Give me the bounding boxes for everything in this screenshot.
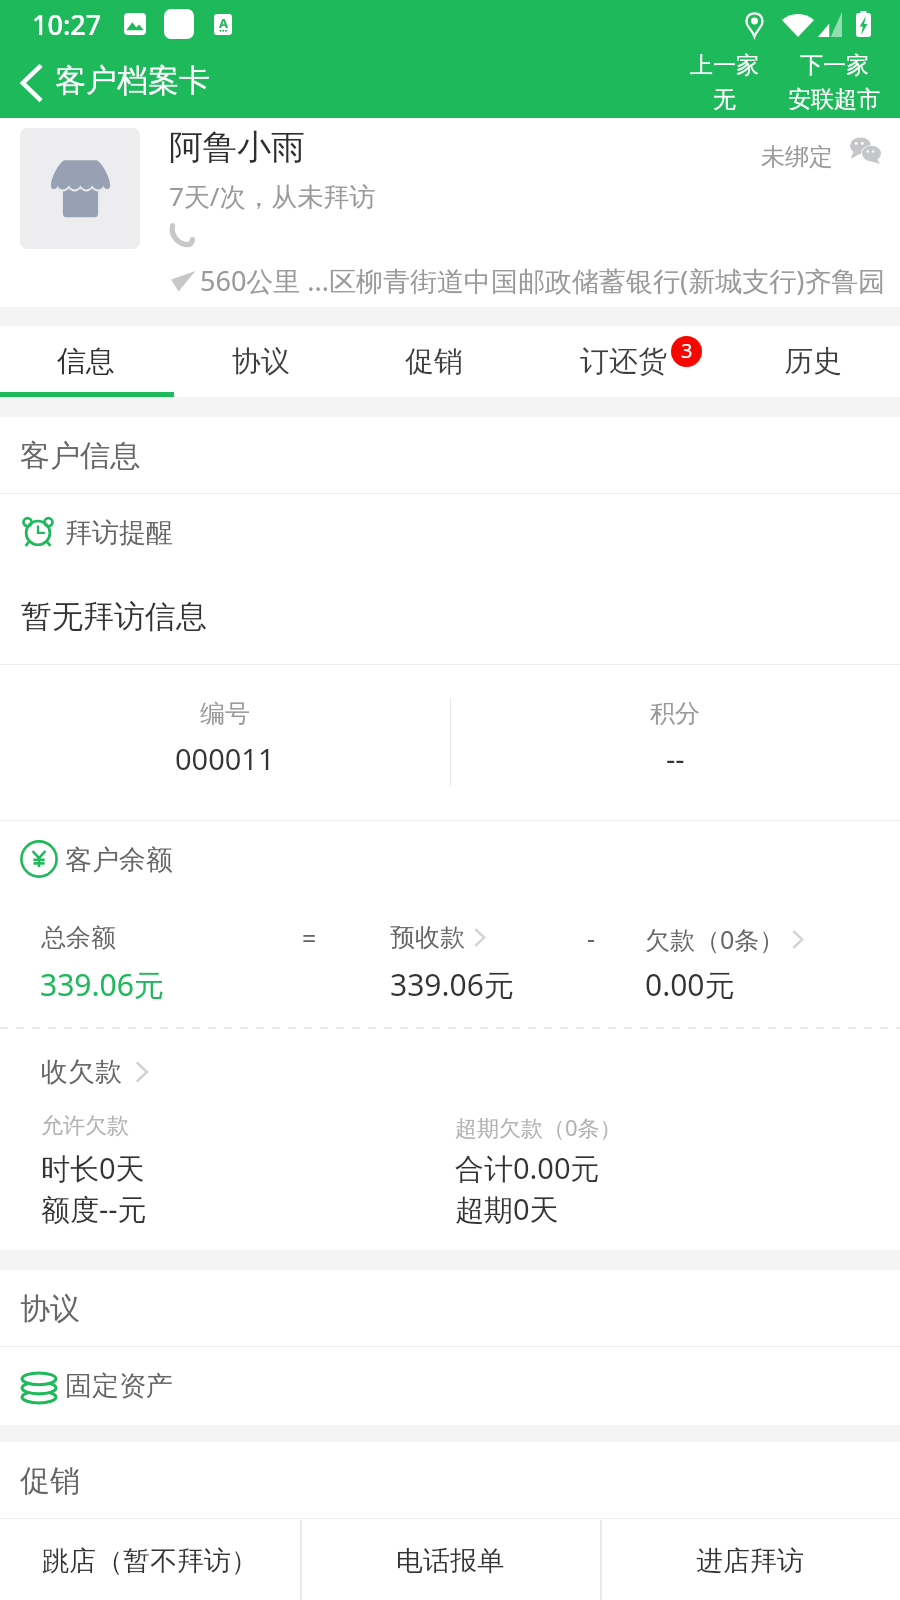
- button[interactable]: Back: [0, 63, 220, 103]
- staticText: 历史: [784, 343, 842, 380]
- staticText: 额度--元: [41, 1189, 147, 1229]
- staticText: 未绑定: [761, 142, 833, 172]
- button[interactable]: 欠款（0条）: [645, 922, 804, 956]
- staticText: --: [666, 739, 685, 778]
- staticText: 信息: [57, 343, 115, 380]
- button[interactable]: 促销: [347, 326, 521, 397]
- staticText: 7天/次，从未拜访: [169, 178, 376, 214]
- button[interactable]: 下一家: [786, 51, 882, 115]
- staticText: 协议: [232, 343, 290, 380]
- button[interactable]: 协议: [173, 326, 349, 397]
- staticText: 编号: [200, 698, 250, 729]
- staticText: =: [302, 921, 317, 955]
- button[interactable]: 历史: [726, 326, 900, 397]
- staticText: 跳店（暂不拜访）: [42, 1544, 258, 1578]
- button[interactable]: 电话报单: [300, 1520, 600, 1600]
- button[interactable]: 上一家: [676, 51, 772, 115]
- staticText: 拜访提醒: [65, 516, 173, 550]
- staticText: 10:27: [32, 6, 102, 43]
- staticText: 339.06元: [40, 964, 164, 1005]
- staticText: 积分: [650, 698, 700, 729]
- staticText: 暂无拜访信息: [21, 597, 207, 636]
- staticText: 3: [681, 337, 693, 364]
- staticText: 超期欠款（0条）: [455, 1112, 622, 1142]
- staticText: 560公里 ...区柳青街道中国邮政储蓄银行(新城支行)齐鲁园: [200, 262, 886, 299]
- staticText: 欠款（0条）: [645, 922, 785, 956]
- staticText: 安联超市: [788, 85, 880, 114]
- staticText: 收欠款: [41, 1055, 122, 1089]
- staticText: 0.00元: [645, 964, 735, 1005]
- staticText: -: [587, 921, 596, 955]
- staticText: 客户余额: [65, 843, 173, 877]
- staticText: 000011: [175, 739, 275, 778]
- staticText: 无: [713, 85, 736, 114]
- staticText: 上一家: [690, 51, 759, 80]
- staticText: 进店拜访: [696, 1544, 804, 1578]
- staticText: 合计0.00元: [455, 1148, 600, 1188]
- button[interactable]: 订还货: [533, 326, 713, 397]
- staticText: 339.06元: [390, 964, 514, 1005]
- staticText: A: [219, 14, 228, 32]
- other: Back: [19, 63, 43, 103]
- staticText: 促销: [405, 343, 463, 380]
- staticText: 订还货: [580, 343, 667, 380]
- staticText: 预收款: [390, 922, 465, 953]
- staticText: 超期0天: [455, 1189, 559, 1229]
- staticText: 协议: [20, 1290, 80, 1328]
- staticText: 下一家: [800, 51, 869, 80]
- staticText: 时长0天: [41, 1148, 145, 1188]
- staticText: 客户档案卡: [55, 61, 210, 100]
- staticText: 促销: [20, 1462, 80, 1500]
- button[interactable]: 信息: [0, 326, 173, 397]
- staticText: 客户信息: [20, 437, 140, 475]
- staticText: 总余额: [41, 922, 116, 953]
- staticText: 允许欠款: [41, 1112, 129, 1140]
- staticText: 固定资产: [65, 1369, 173, 1403]
- staticText: 电话报单: [396, 1544, 504, 1578]
- button[interactable]: 跳店（暂不拜访）: [0, 1520, 300, 1600]
- staticText: 阿鲁小雨: [169, 126, 305, 169]
- button[interactable]: 进店拜访: [600, 1520, 900, 1600]
- button[interactable]: 收欠款: [41, 1055, 149, 1089]
- button[interactable]: 预收款: [390, 922, 486, 953]
